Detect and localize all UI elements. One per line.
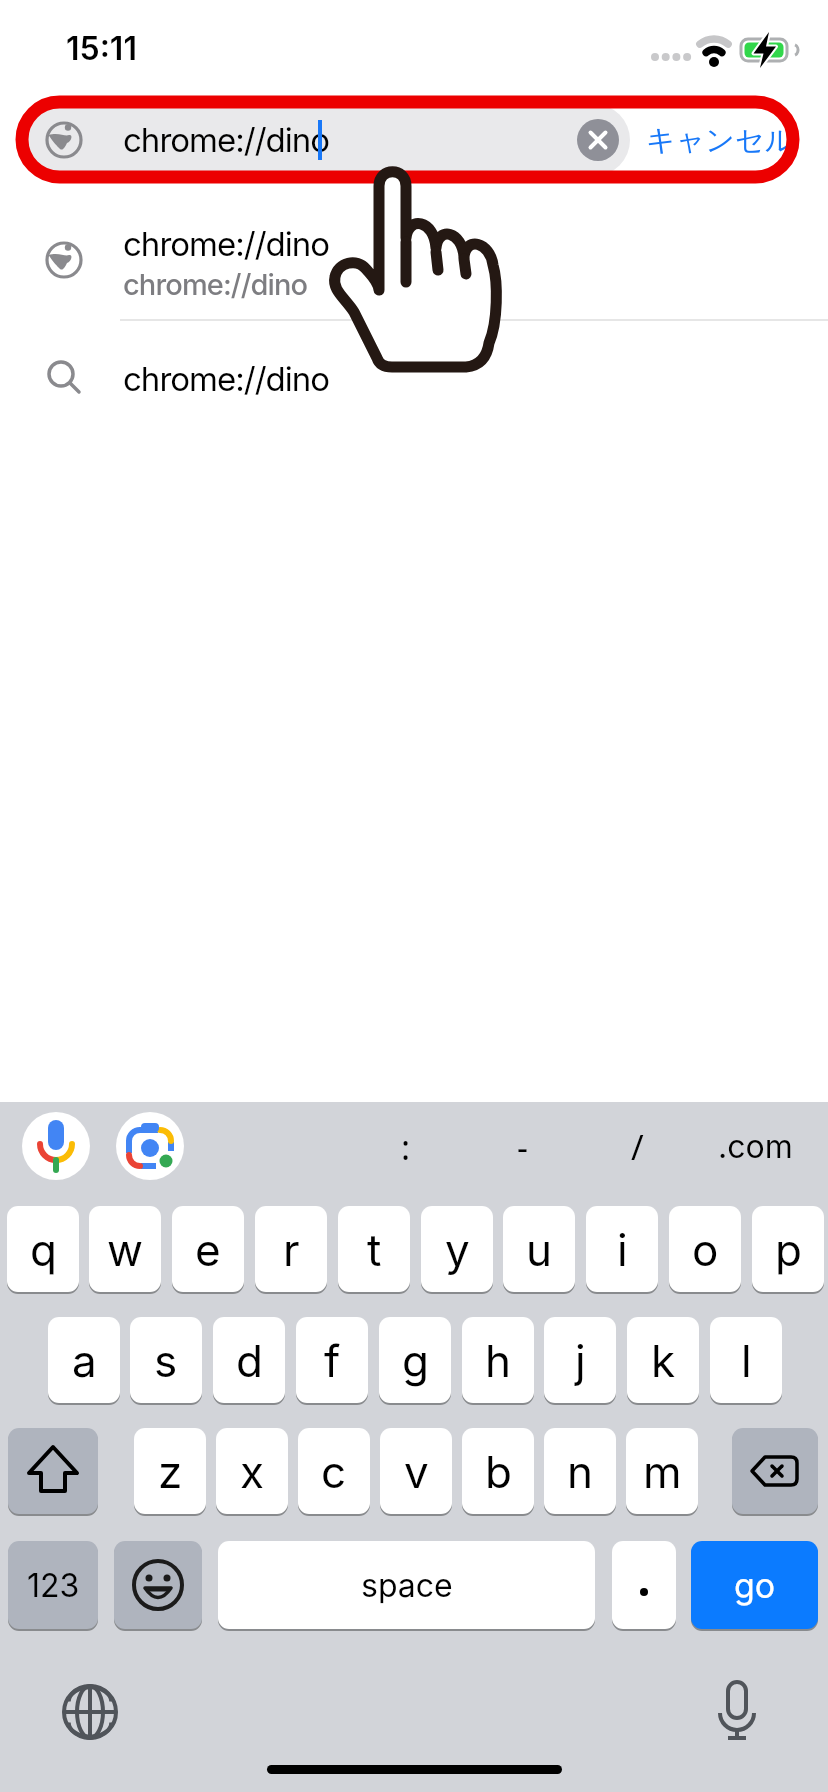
button[interactable]: y [421, 1206, 493, 1292]
staticText: e [195, 1223, 221, 1276]
staticText: o [692, 1223, 719, 1276]
button[interactable] [732, 1428, 818, 1514]
staticText: 15:11 [66, 29, 137, 68]
staticText: y [445, 1223, 470, 1276]
button[interactable] [28, 104, 630, 176]
button[interactable] [0, 200, 828, 320]
button[interactable]: c [298, 1428, 370, 1514]
button[interactable]: w [89, 1206, 161, 1292]
staticText: m [643, 1445, 682, 1498]
button[interactable]: a [48, 1317, 120, 1403]
staticText: j [575, 1334, 586, 1387]
button[interactable]: g [379, 1317, 451, 1403]
staticText: c [321, 1445, 347, 1498]
staticText: u [526, 1223, 553, 1276]
button[interactable] [0, 330, 828, 425]
button[interactable]: d [213, 1317, 285, 1403]
button[interactable] [114, 1541, 202, 1629]
button[interactable]: k [627, 1317, 699, 1403]
staticText: キャンセル [646, 122, 795, 159]
staticText: s [154, 1334, 178, 1387]
staticText: p [775, 1223, 802, 1276]
staticText: z [158, 1445, 183, 1498]
button[interactable]: n [544, 1428, 616, 1514]
staticText: g [402, 1334, 429, 1387]
button[interactable]: s [130, 1317, 202, 1403]
button[interactable]: p [752, 1206, 824, 1292]
staticText: x [240, 1445, 265, 1498]
button[interactable] [612, 1541, 676, 1629]
staticText: chrome://dino [123, 120, 330, 160]
staticText: k [651, 1334, 676, 1387]
button[interactable] [577, 119, 619, 161]
staticText: t [367, 1223, 382, 1276]
staticText: go [734, 1565, 776, 1606]
staticText: : [401, 1124, 411, 1168]
button[interactable]: u [503, 1206, 575, 1292]
staticText: n [567, 1445, 593, 1498]
staticText: / [631, 1124, 644, 1168]
button[interactable] [22, 1112, 90, 1180]
button[interactable]: j [544, 1317, 616, 1403]
staticText: - [517, 1124, 528, 1168]
staticText: r [283, 1223, 300, 1276]
button[interactable] [8, 1428, 98, 1514]
staticText: d [236, 1334, 263, 1387]
staticText: a [72, 1334, 97, 1387]
button[interactable]: v [380, 1428, 452, 1514]
staticText: v [404, 1445, 429, 1498]
button[interactable]: .com [700, 1124, 810, 1168]
staticText: i [617, 1223, 628, 1276]
button[interactable]: f [296, 1317, 368, 1403]
button[interactable]: e [172, 1206, 244, 1292]
button[interactable]: go [691, 1541, 818, 1629]
button[interactable]: / [607, 1124, 667, 1168]
staticText: q [30, 1223, 57, 1276]
button[interactable] [116, 1112, 184, 1180]
button[interactable]: o [669, 1206, 741, 1292]
staticText: f [324, 1334, 341, 1387]
button[interactable]: x [216, 1428, 288, 1514]
button[interactable]: space [218, 1541, 595, 1629]
staticText: b [485, 1445, 512, 1498]
staticText: w [107, 1223, 144, 1276]
button[interactable]: z [134, 1428, 206, 1514]
staticText: chrome://dino [123, 267, 308, 302]
button[interactable]: 123 [8, 1541, 98, 1629]
button[interactable]: q [7, 1206, 79, 1292]
staticText: l [741, 1334, 752, 1387]
staticText: space [361, 1566, 453, 1605]
button[interactable]: キャンセル [644, 119, 796, 161]
staticText: chrome://dino [123, 359, 330, 399]
staticText: 123 [27, 1566, 80, 1605]
button[interactable]: b [462, 1428, 534, 1514]
button[interactable]: l [710, 1317, 782, 1403]
staticText: chrome://dino [123, 224, 330, 264]
button[interactable]: r [255, 1206, 327, 1292]
button[interactable]: h [462, 1317, 534, 1403]
staticText: .com [718, 1127, 793, 1166]
button[interactable]: m [626, 1428, 698, 1514]
staticText: h [485, 1334, 512, 1387]
button[interactable]: i [586, 1206, 658, 1292]
button[interactable]: : [376, 1124, 436, 1168]
button[interactable]: t [338, 1206, 410, 1292]
button[interactable]: - [492, 1124, 552, 1168]
